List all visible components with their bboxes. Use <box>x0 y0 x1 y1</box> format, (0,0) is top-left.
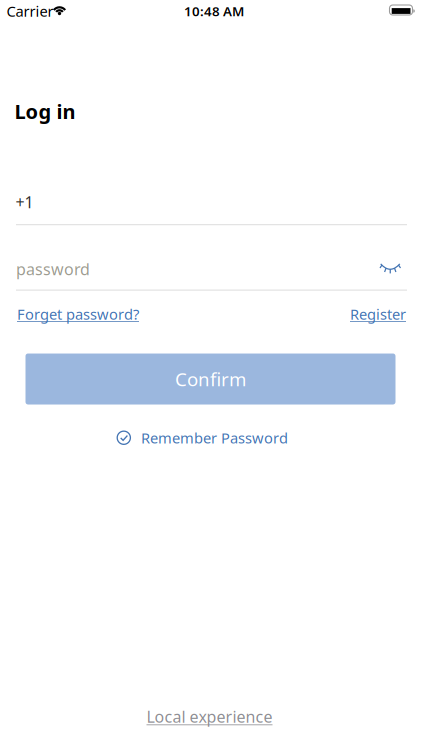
staticText: Carrier <box>6 1 53 21</box>
staticText: Confirm <box>175 367 246 391</box>
staticText: password <box>16 258 90 279</box>
button[interactable]: Show password <box>380 263 400 275</box>
button[interactable]: Confirm <box>25 353 395 404</box>
button[interactable]: Local experience <box>146 706 272 727</box>
textField[interactable]: +1 <box>15 191 406 212</box>
button[interactable]: Register <box>350 304 406 324</box>
staticText: Local experience <box>146 706 272 727</box>
staticText: Register <box>350 304 406 324</box>
staticText: Remember Password <box>141 428 288 447</box>
staticText: 10:48 AM <box>184 2 244 20</box>
button[interactable]: Remember Password <box>116 428 288 447</box>
secureTextField[interactable]: password <box>16 258 371 279</box>
staticText: Log in <box>14 98 75 125</box>
staticText: +1 <box>15 191 33 212</box>
button[interactable]: Forget password? <box>17 304 139 324</box>
staticText: Forget password? <box>17 304 139 324</box>
